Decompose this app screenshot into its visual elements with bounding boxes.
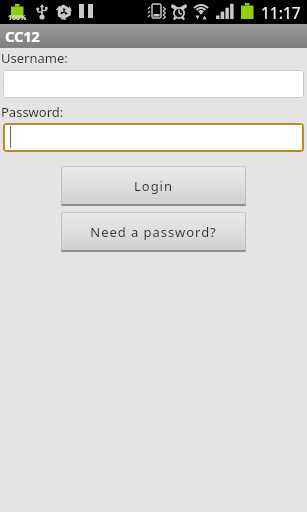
staticText: CC12 <box>5 26 40 46</box>
staticText: 11:17 <box>261 2 301 23</box>
button[interactable]: Password field <box>3 123 304 152</box>
other: Status icons <box>0 0 307 24</box>
staticText: 100% <box>8 13 27 23</box>
staticText: Need a password? <box>90 223 217 241</box>
button[interactable]: Need a password? <box>61 212 246 252</box>
button[interactable]: Login <box>61 166 246 206</box>
button[interactable]: Username field <box>3 70 304 98</box>
button[interactable]: CC12 <box>0 24 307 48</box>
staticText: Password: <box>1 103 64 121</box>
staticText: Username: <box>1 49 68 67</box>
staticText: Login <box>134 177 173 195</box>
